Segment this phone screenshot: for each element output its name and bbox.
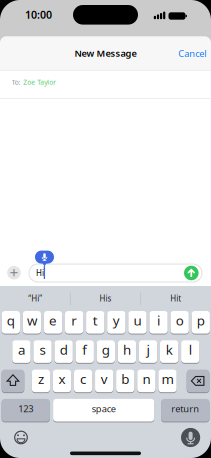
button[interactable]: m	[158, 370, 177, 392]
staticText: g	[102, 341, 110, 358]
staticText: w	[27, 311, 37, 329]
staticText: v	[101, 370, 108, 388]
button[interactable]: x	[53, 370, 71, 392]
button[interactable]: n	[137, 370, 155, 392]
button[interactable]: d	[54, 340, 73, 363]
button[interactable]: z	[32, 370, 50, 392]
button[interactable]: Cancel	[172, 43, 211, 63]
button[interactable]: h	[118, 340, 136, 363]
button[interactable]: w	[23, 311, 41, 334]
button[interactable]: Emoji	[13, 430, 29, 445]
button[interactable]: Message field	[29, 264, 202, 282]
staticText: b	[121, 370, 129, 388]
button[interactable]: Add attachment	[7, 266, 21, 279]
staticText: n	[142, 370, 150, 388]
button[interactable]: u	[128, 311, 147, 334]
staticText: m	[161, 370, 173, 388]
button[interactable]: His	[72, 287, 138, 309]
staticText: i	[157, 311, 160, 329]
button[interactable]: Send	[184, 266, 199, 280]
staticText: c	[80, 370, 86, 388]
button[interactable]: l	[181, 340, 199, 363]
button[interactable]: j	[139, 340, 157, 363]
button[interactable]: f	[76, 340, 94, 363]
button[interactable]: k	[160, 340, 178, 363]
staticText: l	[189, 341, 192, 358]
button[interactable]: Shift	[2, 370, 24, 392]
staticText: Cancel	[178, 47, 206, 60]
staticText: New Message	[74, 47, 136, 59]
button[interactable]: To:	[0, 68, 211, 96]
button[interactable]: g	[97, 340, 115, 363]
staticText: d	[60, 341, 68, 358]
staticText: return	[171, 402, 199, 415]
button[interactable]: s	[33, 340, 52, 363]
button[interactable]: y	[107, 311, 125, 334]
button[interactable]: v	[95, 370, 113, 392]
button[interactable]: Delete	[187, 370, 209, 392]
staticText: k	[166, 341, 173, 358]
staticText: s	[39, 341, 45, 358]
staticText: e	[49, 311, 57, 329]
staticText: a	[18, 341, 25, 358]
staticText: Zoe Taylor	[23, 78, 56, 87]
button[interactable]: Dictation	[35, 251, 54, 267]
staticText: His	[99, 293, 111, 304]
staticText: y	[113, 311, 120, 329]
staticText: j	[147, 341, 150, 358]
button[interactable]: 123	[2, 399, 50, 421]
button[interactable]: i	[149, 311, 168, 334]
staticText: 123	[18, 402, 33, 415]
staticText: u	[133, 311, 141, 329]
button[interactable]: Hit	[143, 287, 209, 309]
staticText: q	[7, 311, 15, 329]
staticText: r	[71, 311, 77, 329]
staticText: “Hi”	[28, 293, 42, 304]
button[interactable]: space	[53, 399, 154, 421]
button[interactable]: t	[86, 311, 104, 334]
button[interactable]: a	[12, 340, 31, 363]
staticText: h	[123, 341, 131, 358]
button[interactable]: Dictate	[181, 428, 200, 447]
staticText: To:	[12, 78, 21, 87]
staticText: o	[176, 311, 184, 329]
staticText: 10:00	[25, 7, 52, 22]
staticText: f	[82, 341, 87, 358]
staticText: Hit	[170, 293, 181, 304]
button[interactable]: c	[74, 370, 92, 392]
staticText: space	[92, 402, 116, 415]
staticText: p	[197, 311, 205, 329]
button[interactable]: p	[192, 311, 210, 334]
button[interactable]: “Hi”	[2, 287, 68, 309]
staticText: Hi	[36, 267, 44, 278]
button[interactable]: o	[170, 311, 189, 334]
button[interactable]: q	[2, 311, 20, 334]
staticText: z	[38, 370, 44, 388]
button[interactable]: e	[44, 311, 62, 334]
button[interactable]: b	[116, 370, 134, 392]
button[interactable]: return	[161, 399, 209, 421]
staticText: x	[58, 370, 65, 388]
staticText: t	[93, 311, 98, 329]
button[interactable]: r	[65, 311, 83, 334]
